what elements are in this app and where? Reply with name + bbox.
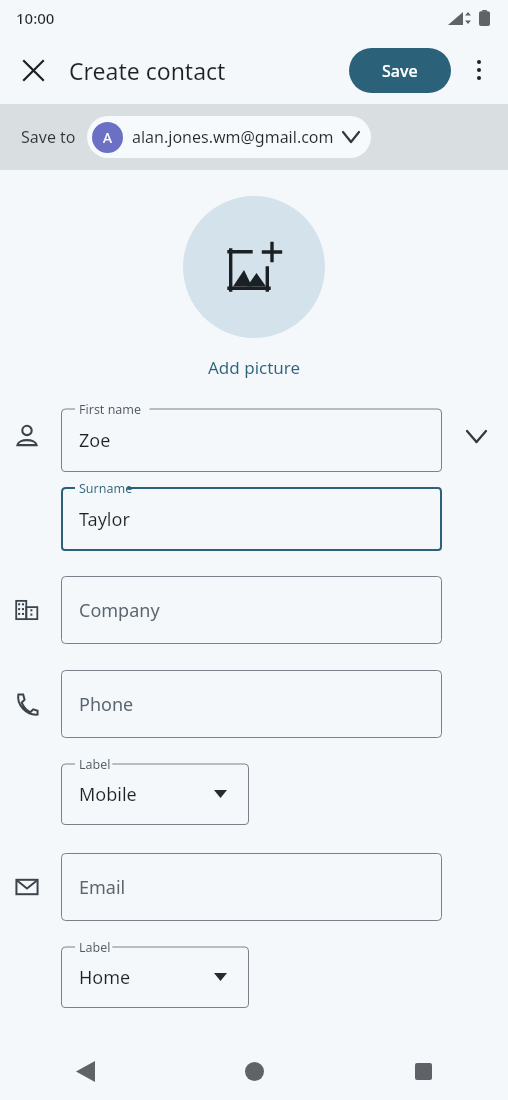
button[interactable]: A (87, 116, 371, 158)
button[interactable]: Home (170, 1042, 339, 1100)
staticText: Surname (79, 480, 133, 497)
button[interactable]: First name (61, 400, 442, 472)
staticText: Mobile (79, 782, 137, 807)
staticText: Phone (79, 692, 134, 717)
staticText: Email (79, 875, 126, 900)
staticText: alan.jones.wm@gmail.com (132, 126, 334, 148)
staticText: 10:00 (16, 8, 55, 28)
button[interactable]: Add picture (183, 196, 325, 338)
button[interactable]: Email (61, 853, 442, 921)
button[interactable]: Expand name fields (442, 400, 508, 472)
button[interactable]: Save (349, 48, 451, 93)
button[interactable]: Recent apps (339, 1042, 508, 1100)
button[interactable]: Label (61, 755, 249, 825)
staticText: Save (382, 60, 418, 82)
staticText: Zoe (79, 428, 111, 453)
button[interactable]: Label (61, 938, 249, 1008)
staticText: Label (79, 756, 111, 773)
staticText: Create contact (69, 55, 226, 86)
staticText: Taylor (79, 507, 130, 532)
staticText: Add picture (208, 356, 301, 379)
button[interactable]: Company (61, 576, 442, 644)
button[interactable]: Phone (61, 670, 442, 738)
staticText: Home (79, 965, 131, 990)
button[interactable]: Back (0, 1042, 170, 1100)
staticText: A (103, 128, 112, 147)
button[interactable]: More options (456, 47, 502, 93)
button[interactable]: Surname (61, 479, 442, 551)
button[interactable]: Close (10, 47, 56, 93)
staticText: First name (79, 401, 142, 418)
staticText: Label (79, 939, 111, 956)
staticText: Company (79, 598, 160, 623)
button[interactable]: Add picture (204, 352, 305, 383)
staticText: Save to (21, 126, 76, 148)
